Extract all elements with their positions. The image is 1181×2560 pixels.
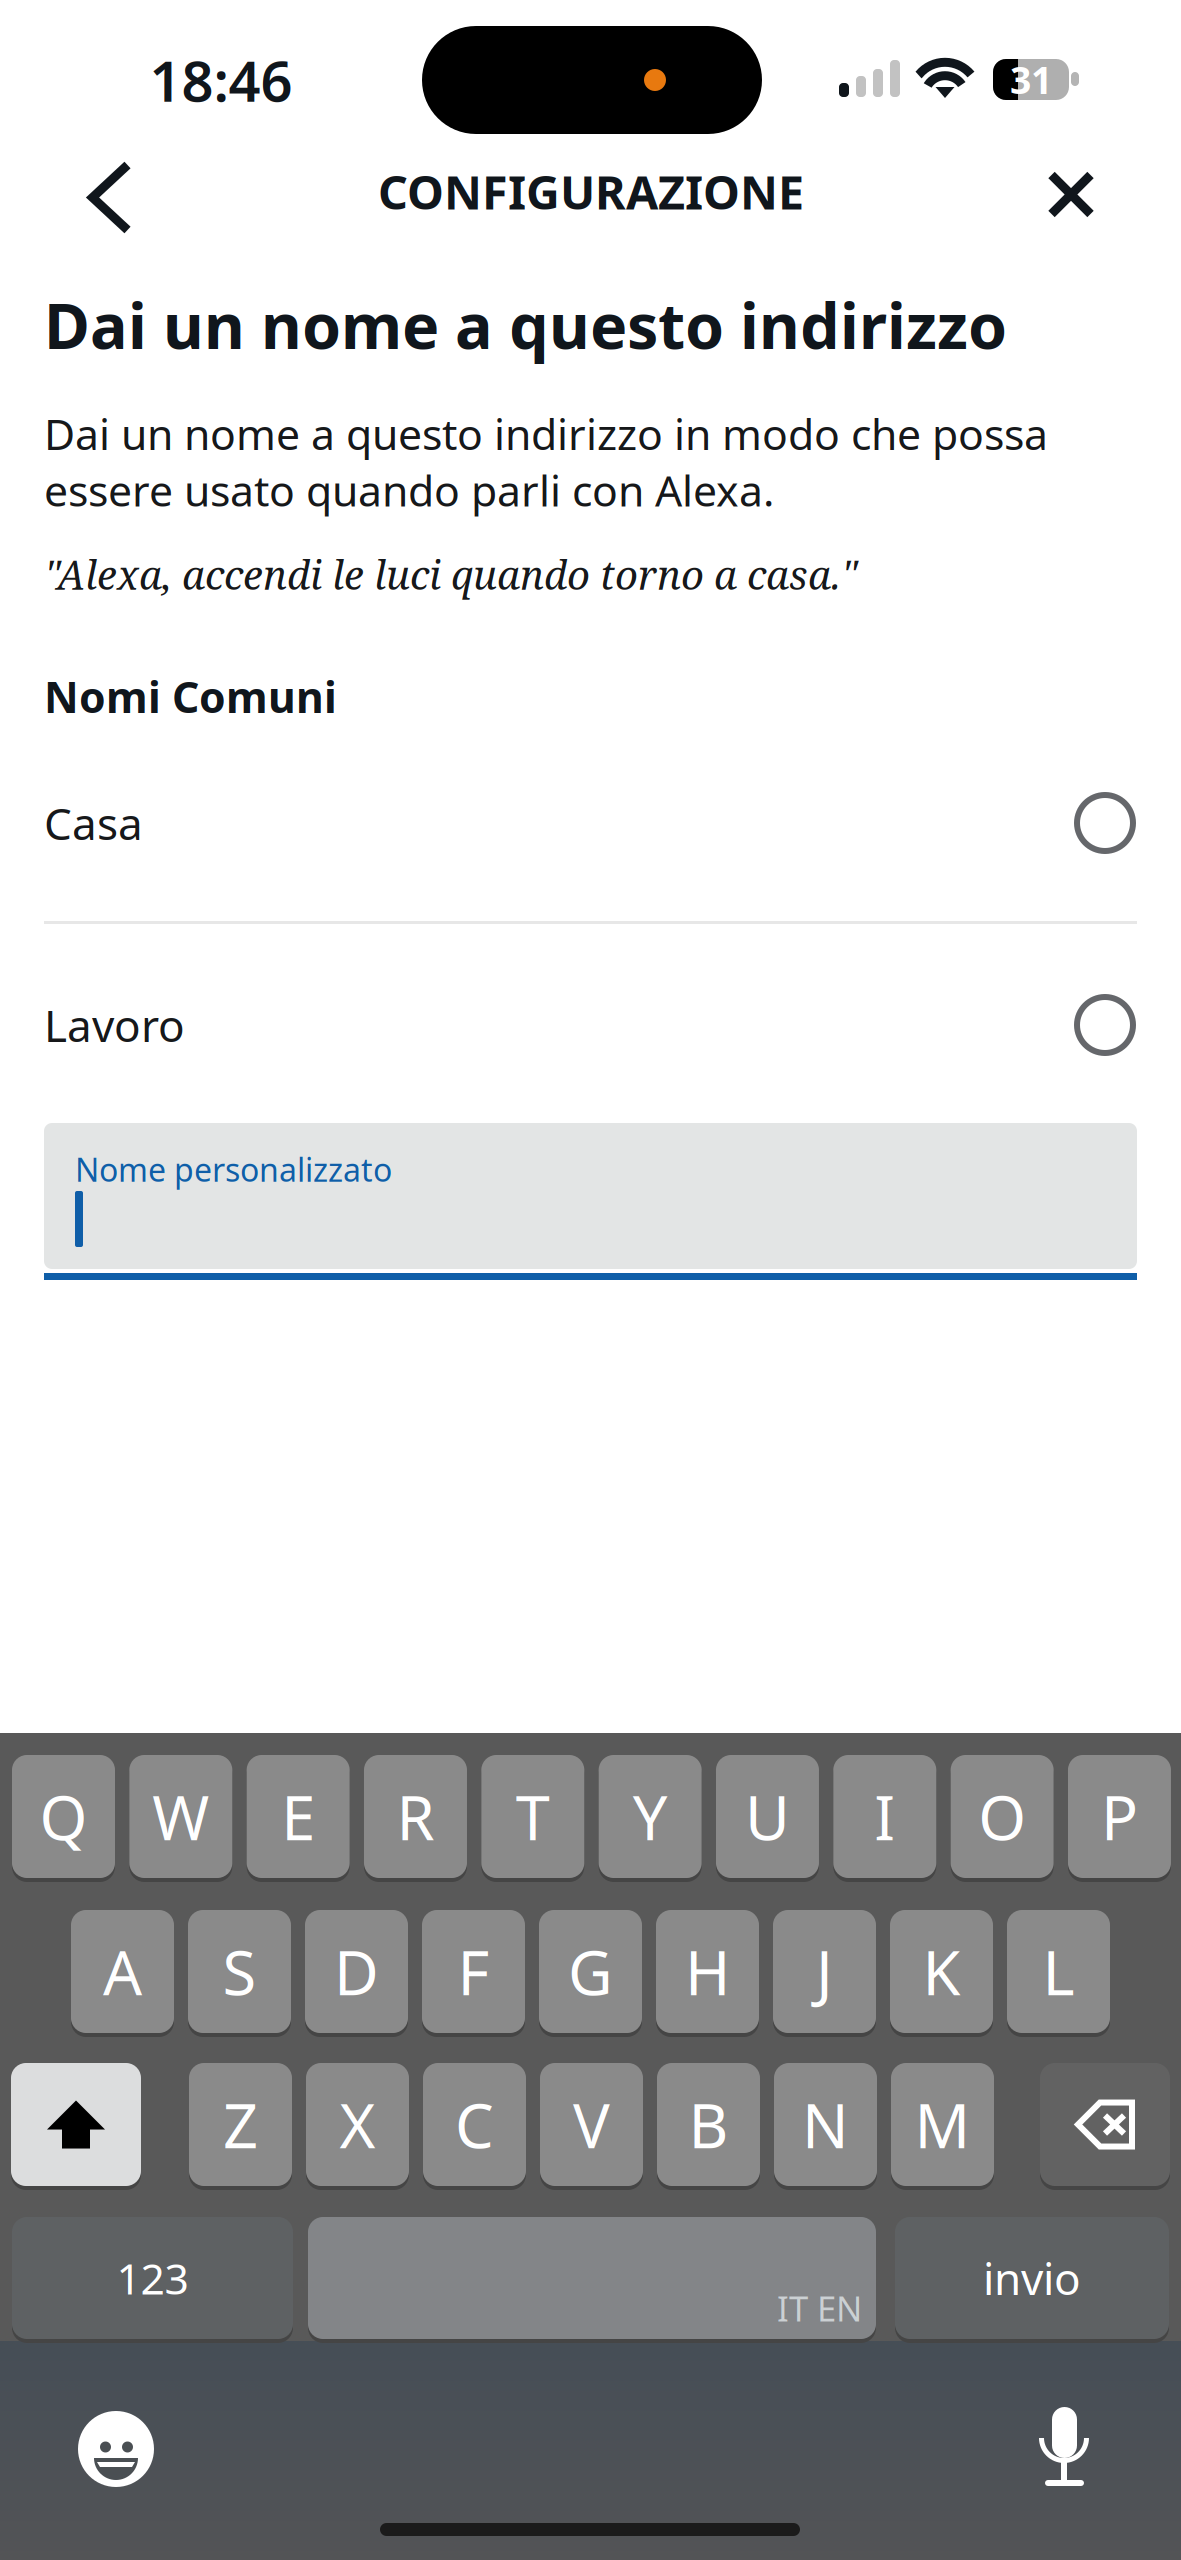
staticText: 123 — [116, 2250, 188, 2306]
button[interactable]: D — [305, 1910, 408, 2037]
staticText: T — [516, 1776, 550, 1857]
button[interactable]: N — [774, 2063, 877, 2190]
staticText: H — [685, 1931, 730, 2012]
staticText: Nomi Comuni — [44, 668, 337, 725]
staticText: O — [978, 1776, 1026, 1857]
button[interactable]: S — [188, 1910, 291, 2037]
button[interactable]: Dettatura — [1038, 2407, 1090, 2487]
staticText: "Alexa, accendi le luci quando torno a c… — [44, 547, 857, 601]
staticText: C — [455, 2084, 494, 2165]
button[interactable]: Indietro — [45, 145, 175, 250]
button[interactable]: G — [539, 1910, 642, 2037]
staticText: G — [568, 1931, 613, 2012]
staticText: Dai un nome a questo indirizzo in modo c… — [44, 405, 1048, 518]
button[interactable]: Emoji — [78, 2411, 154, 2487]
staticText: E — [281, 1776, 315, 1857]
staticText: P — [1101, 1776, 1138, 1857]
staticText: 31 — [1010, 55, 1052, 104]
staticText: B — [688, 2084, 728, 2165]
button[interactable]: X — [306, 2063, 409, 2190]
staticText: S — [222, 1931, 256, 2012]
staticText: N — [802, 2084, 849, 2165]
button[interactable]: P — [1068, 1755, 1171, 1882]
button[interactable]: R — [364, 1755, 467, 1882]
staticText: A — [103, 1931, 142, 2012]
button[interactable]: C — [423, 2063, 526, 2190]
staticText: 18:46 — [149, 43, 292, 117]
button[interactable]: Chiudi — [1006, 142, 1136, 247]
staticText: V — [573, 2084, 610, 2165]
button[interactable]: Cancella — [1040, 2063, 1170, 2186]
button[interactable]: Casa — [0, 758, 1181, 888]
button[interactable]: J — [773, 1910, 876, 2037]
button[interactable]: I — [833, 1755, 936, 1882]
button[interactable]: T — [481, 1755, 584, 1882]
button[interactable]: invio — [895, 2217, 1169, 2343]
button[interactable]: Maiuscole — [11, 2063, 141, 2186]
button[interactable]: M — [891, 2063, 994, 2190]
staticText: J — [816, 1931, 833, 2012]
button[interactable]: Z — [189, 2063, 292, 2190]
staticText: Y — [633, 1776, 668, 1857]
staticText: D — [334, 1931, 379, 2012]
staticText: R — [396, 1776, 434, 1857]
button[interactable]: A — [71, 1910, 174, 2037]
staticText: W — [152, 1776, 209, 1857]
button[interactable]: U — [716, 1755, 819, 1882]
staticText: F — [457, 1931, 489, 2012]
button[interactable]: L — [1007, 1910, 1110, 2037]
button[interactable]: Lavoro — [0, 960, 1181, 1090]
button[interactable]: F — [422, 1910, 525, 2037]
button[interactable]: Nome personalizzato — [44, 1123, 1137, 1280]
staticText: U — [745, 1776, 790, 1857]
staticText: Casa — [44, 794, 143, 852]
button[interactable]: W — [129, 1755, 232, 1882]
staticText: I — [874, 1776, 895, 1857]
button[interactable]: O — [951, 1755, 1054, 1882]
staticText: invio — [983, 2249, 1081, 2307]
staticText: Dai un nome a questo indirizzo — [44, 283, 1007, 366]
button[interactable]: K — [890, 1910, 993, 2037]
staticText: CONFIGURAZIONE — [378, 160, 804, 222]
button[interactable]: 123 — [12, 2217, 293, 2343]
button[interactable]: Q — [12, 1755, 115, 1882]
staticText: X — [339, 2084, 375, 2165]
button[interactable]: B — [657, 2063, 760, 2190]
staticText: L — [1042, 1931, 1074, 2012]
button[interactable]: H — [656, 1910, 759, 2037]
staticText: Q — [39, 1776, 87, 1857]
staticText: Z — [223, 2084, 258, 2165]
staticText: Nome personalizzato — [75, 1148, 392, 1190]
button[interactable]: Y — [599, 1755, 702, 1882]
staticText: K — [922, 1931, 960, 2012]
staticText: Lavoro — [44, 996, 185, 1054]
staticText: IT EN — [777, 2285, 862, 2331]
button[interactable]: E — [247, 1755, 350, 1882]
button[interactable]: V — [540, 2063, 643, 2190]
staticText: M — [914, 2084, 970, 2165]
